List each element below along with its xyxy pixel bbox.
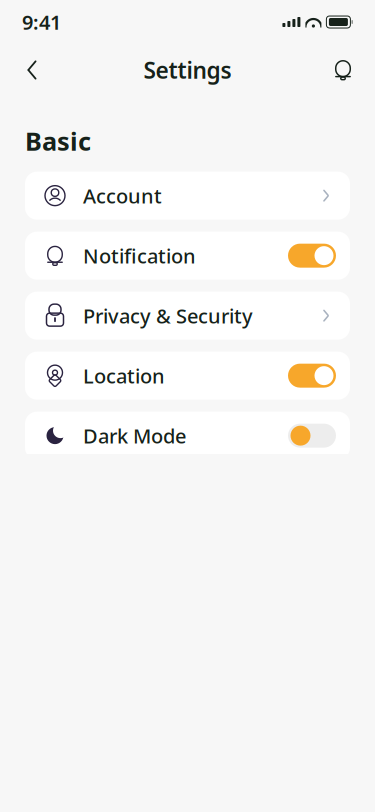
staticText: Privacy & Security [83, 302, 253, 329]
button[interactable]: Privacy & Security [25, 292, 350, 340]
button[interactable]: Back [10, 48, 54, 92]
staticText: Location [83, 362, 165, 389]
staticText: 9:41 [22, 9, 61, 35]
staticText: Dark Mode [83, 422, 186, 449]
staticText: Notification [83, 242, 196, 269]
staticText: Settings [143, 55, 231, 85]
staticText: Basic [25, 124, 91, 158]
button[interactable]: Location [25, 352, 350, 400]
button[interactable]: Notifications [321, 48, 365, 92]
staticText: Account [83, 182, 162, 209]
button[interactable]: Notification [25, 232, 350, 280]
button[interactable]: Dark Mode [25, 412, 350, 460]
button[interactable]: Account [25, 172, 350, 220]
